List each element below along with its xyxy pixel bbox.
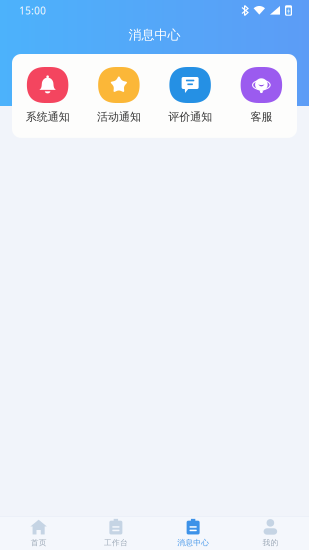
button[interactable]: 工作台 [77, 515, 154, 550]
staticText: 客服 [250, 110, 272, 124]
button[interactable]: 消息中心 [154, 515, 232, 550]
staticText: 15:00 [19, 4, 46, 17]
staticText: 活动通知 [97, 110, 141, 124]
staticText: 消息中心 [128, 27, 180, 43]
button[interactable]: 系统通知 [12, 67, 83, 124]
staticText: 评价通知 [168, 110, 212, 124]
staticText: 消息中心 [177, 538, 209, 548]
staticText: 首页 [31, 538, 47, 548]
button[interactable]: 客服 [226, 67, 297, 124]
button[interactable]: 活动通知 [83, 67, 154, 124]
staticText: 系统通知 [26, 110, 70, 124]
button[interactable]: 我的 [232, 515, 309, 550]
staticText: 工作台 [104, 538, 128, 548]
staticText: 我的 [262, 538, 278, 548]
button[interactable]: 首页 [0, 515, 77, 550]
button[interactable]: 评价通知 [154, 67, 226, 124]
